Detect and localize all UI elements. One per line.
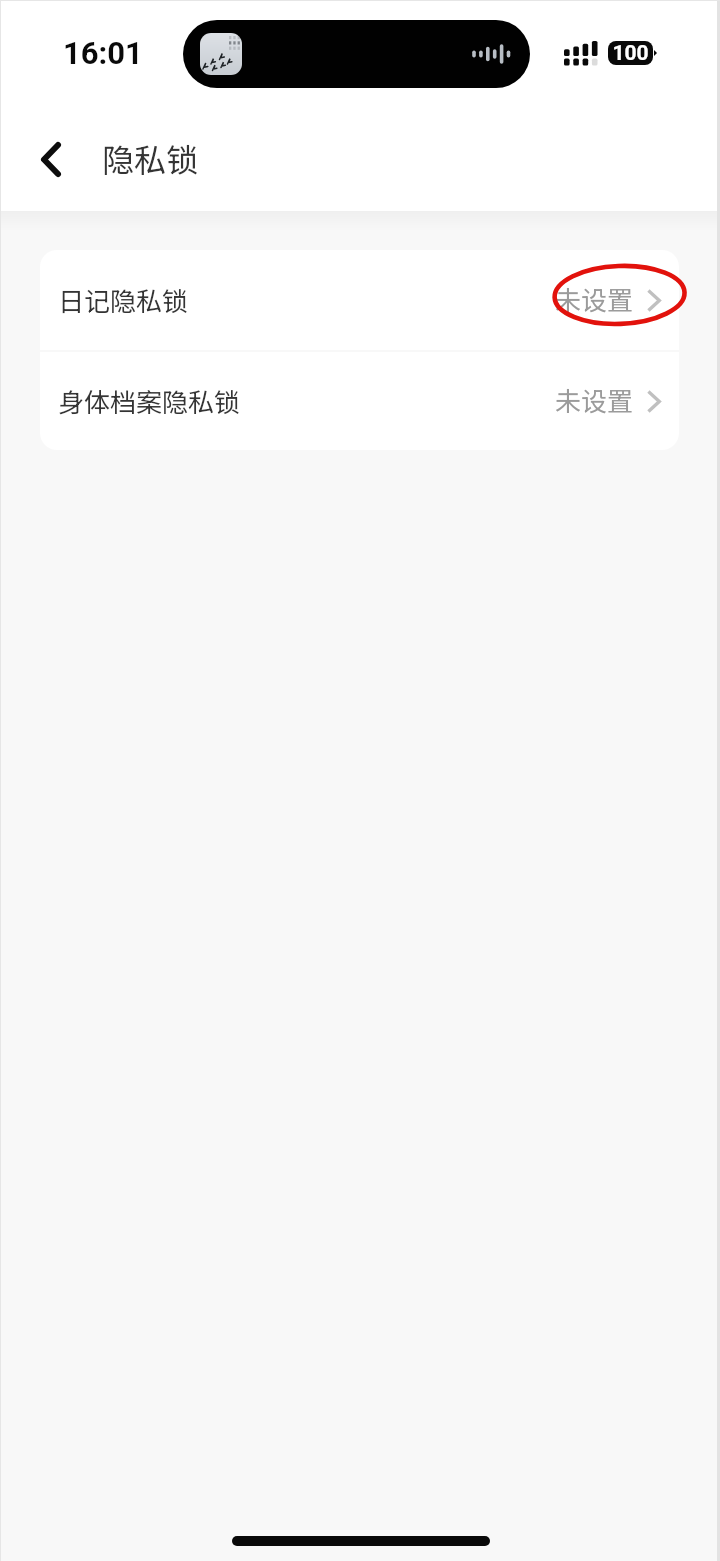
staticText: 身体档案隐私锁	[58, 382, 241, 420]
button[interactable]: 身体档案隐私锁	[40, 352, 679, 450]
staticText: 未设置	[555, 280, 634, 318]
button[interactable]: Back	[20, 128, 82, 190]
staticText: 日记隐私锁	[58, 281, 189, 319]
staticText: 未设置	[555, 381, 634, 419]
staticText: 100	[612, 41, 649, 65]
button[interactable]: 日记隐私锁	[40, 250, 679, 350]
staticText: 16:01	[63, 35, 143, 71]
staticText: 隐私锁	[102, 135, 199, 181]
